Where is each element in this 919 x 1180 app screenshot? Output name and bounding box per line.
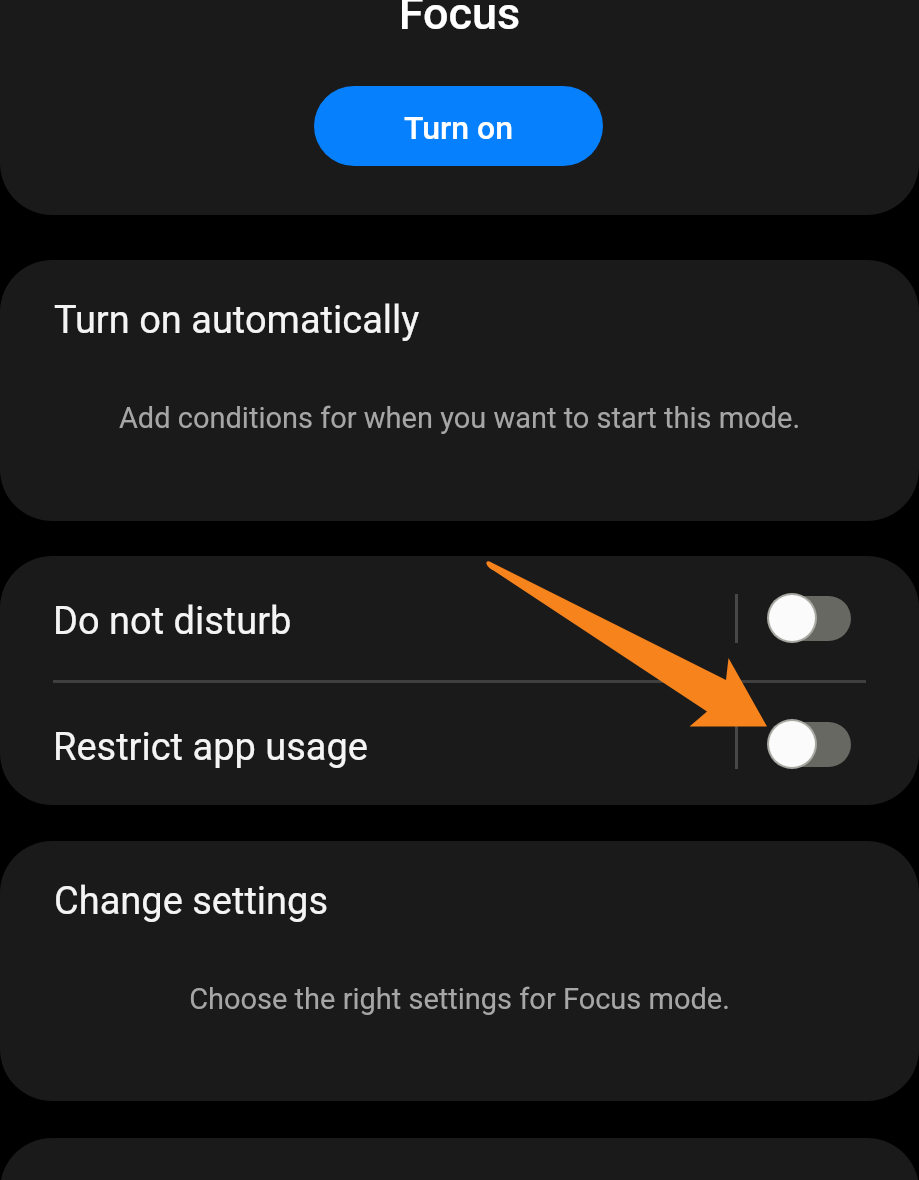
staticText: Focus	[0, 0, 919, 40]
button[interactable]: Change settings	[0, 841, 919, 1101]
staticText: Restrict app usage	[53, 725, 735, 770]
staticText: Choose the right settings for Focus mode…	[40, 982, 879, 1016]
staticText: Turn on automatically	[54, 298, 420, 343]
button[interactable]: Do not disturb	[767, 588, 871, 648]
button[interactable]: Restrict app usage	[767, 714, 871, 774]
button[interactable]: Turn on automatically	[0, 260, 919, 521]
staticText: Change settings	[54, 879, 329, 924]
staticText: Turn on	[404, 109, 514, 147]
staticText: Add conditions for when you want to star…	[40, 401, 879, 435]
button[interactable]: Do not disturb	[0, 556, 919, 680]
staticText: Do not disturb	[53, 599, 735, 644]
button[interactable]: Turn on	[314, 86, 603, 166]
button[interactable]: Restrict app usage	[0, 683, 919, 805]
